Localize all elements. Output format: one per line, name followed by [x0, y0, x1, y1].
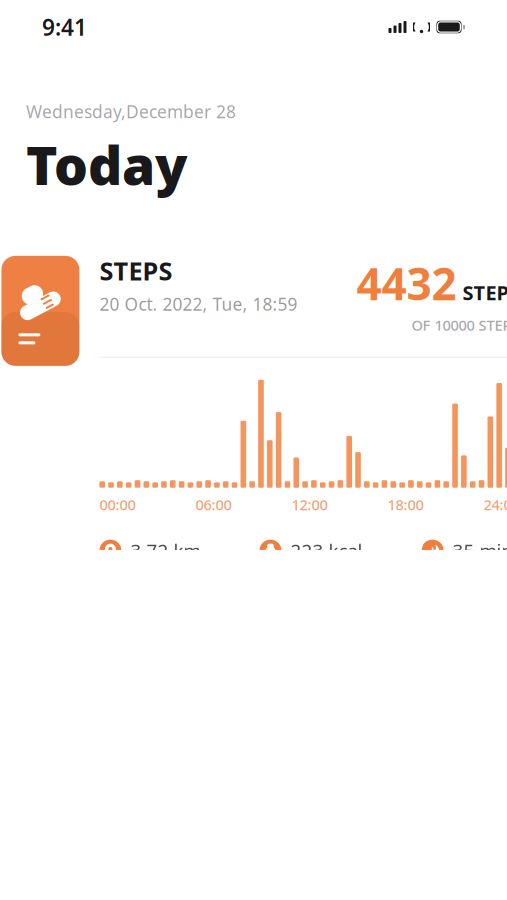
- button[interactable]: 35 min: [422, 538, 507, 563]
- staticText: 223 kcal: [290, 538, 362, 563]
- staticText: 4432: [357, 254, 457, 312]
- button[interactable]: 223 kcal: [259, 538, 362, 563]
- staticText: 35 min: [453, 538, 507, 563]
- staticText: OF 10000 STEPS: [412, 315, 507, 335]
- staticText: 3.72 km: [130, 538, 200, 563]
- staticText: 12:00: [291, 495, 327, 514]
- button[interactable]: 3.72 km: [99, 538, 200, 563]
- staticText: STEPS: [99, 254, 172, 287]
- staticText: Today: [26, 129, 188, 200]
- staticText: Wednesday,December 28: [26, 100, 236, 123]
- staticText: STEPS: [463, 279, 507, 306]
- staticText: 24:00: [484, 495, 507, 514]
- staticText: 9:41: [42, 12, 87, 42]
- staticText: 00:00: [99, 495, 135, 514]
- staticText: 18:00: [388, 495, 424, 514]
- button[interactable]: STEPS: [0, 228, 507, 589]
- staticText: 20 Oct. 2022, Tue, 18:59: [99, 292, 297, 315]
- staticText: 06:00: [195, 495, 231, 514]
